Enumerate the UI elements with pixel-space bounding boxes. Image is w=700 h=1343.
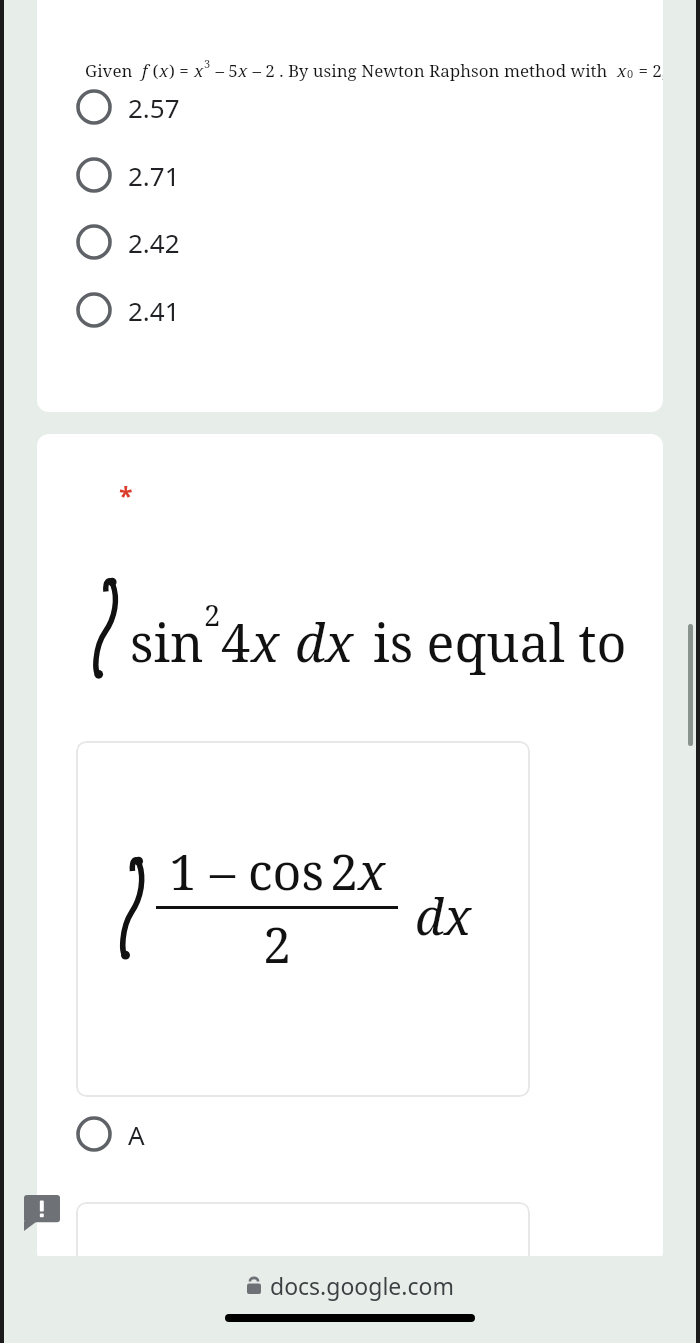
- staticText: 2.42: [128, 225, 180, 260]
- staticText: (: [148, 59, 159, 82]
- staticText: A: [128, 1117, 145, 1152]
- staticText: docs.google.com: [270, 1270, 454, 1301]
- staticText: x: [358, 837, 386, 905]
- staticText: 1: [169, 837, 197, 905]
- staticText: 2.71: [128, 158, 180, 193]
- staticText: –: [197, 837, 248, 905]
- staticText: 2: [263, 910, 291, 978]
- staticText: sin: [130, 606, 204, 677]
- staticText: – 2 . By using Newton Raphson method wit…: [248, 59, 617, 82]
- staticText: 2: [330, 837, 358, 905]
- button[interactable]: 2.42: [37, 208, 663, 276]
- other: Home gesture: [225, 1314, 475, 1322]
- staticText: dx: [295, 606, 354, 677]
- staticText: 0: [627, 66, 634, 81]
- staticText: 2.57: [128, 90, 180, 125]
- staticText: 3: [204, 56, 211, 71]
- staticText: = 2, find: [634, 59, 663, 82]
- staticText: 2.41: [128, 293, 180, 328]
- staticText: ) =: [169, 59, 194, 82]
- staticText: x: [238, 59, 248, 82]
- staticText: 2: [204, 595, 221, 634]
- staticText: 4: [221, 606, 251, 677]
- button[interactable]: 2.41: [37, 276, 663, 344]
- staticText: – 5: [211, 59, 238, 82]
- staticText: Given: [85, 59, 142, 82]
- staticText: x: [194, 59, 204, 82]
- staticText: x: [617, 59, 627, 82]
- staticText: is equal to: [373, 606, 627, 677]
- staticText: x: [251, 606, 280, 677]
- staticText: f: [142, 59, 148, 82]
- staticText: x: [159, 59, 169, 82]
- staticText: dx: [415, 882, 472, 950]
- button[interactable]: 2.71: [37, 141, 663, 209]
- staticText: *: [119, 478, 133, 512]
- other: Warning: [24, 1195, 60, 1231]
- button[interactable]: 2.57: [37, 73, 663, 141]
- staticText: cos: [248, 837, 324, 905]
- button[interactable]: docs.google.com: [233, 1256, 468, 1314]
- button[interactable]: A: [37, 1100, 663, 1168]
